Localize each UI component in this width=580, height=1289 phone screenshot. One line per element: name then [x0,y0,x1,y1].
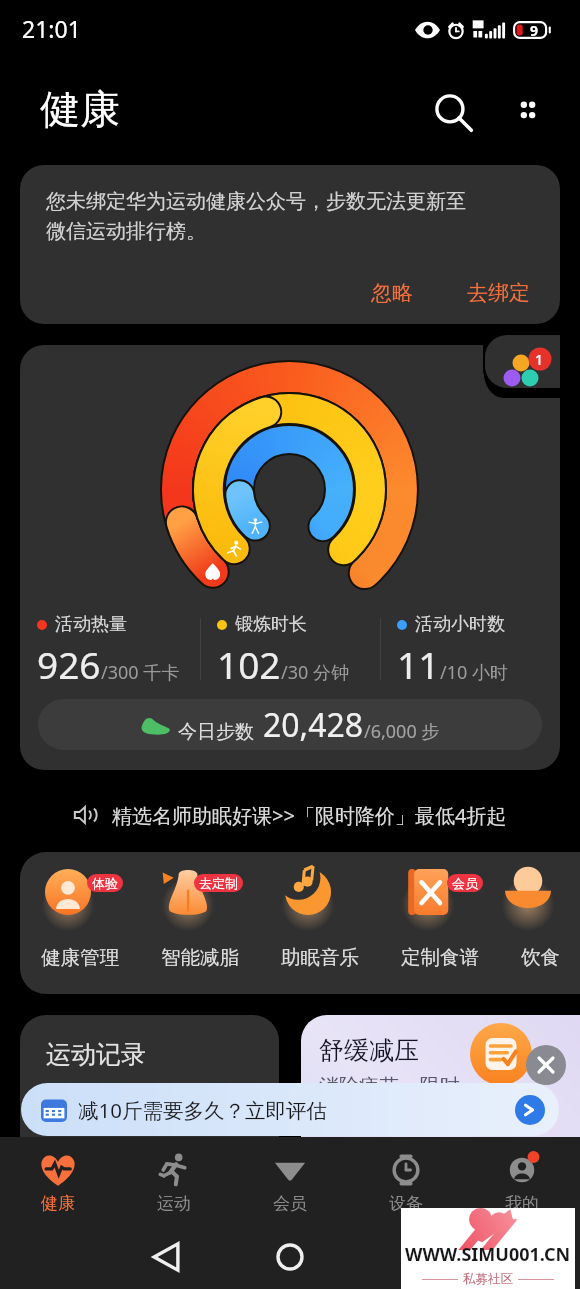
button[interactable]: 会员 [232,1137,348,1217]
staticText: 8.42 [46,1077,118,1126]
button[interactable]: Close [526,1045,566,1085]
button[interactable]: 您未绑定华为运动健康公众号，步数无法更新至 微信运动排行榜。 [20,165,560,324]
staticText: 11 [397,639,440,688]
staticText: 消除疲劳 限时… [319,1072,476,1099]
button[interactable]: Back [144,1235,188,1279]
staticText: 设备 [389,1193,423,1214]
button[interactable]: 运动记录 [20,1015,279,1165]
staticText: 我的 [505,1193,539,1214]
staticText: 1 [535,350,544,369]
staticText: 102 [217,639,281,688]
staticText: 忽略 [371,280,413,306]
staticText: 健康 [41,1193,75,1214]
staticText: 您未绑定华为运动健康公众号，步数无法更新至 微信运动排行榜。 [46,189,466,244]
staticText: WWW.SIMU001.CN [405,1242,571,1267]
button[interactable]: 运动 [116,1137,232,1217]
staticText: 私募社区 [463,1271,513,1287]
staticText: 智能减脂 [161,945,239,970]
staticText: 饮食 [521,945,560,970]
button[interactable]: Home [268,1235,312,1279]
button[interactable]: 减10斤需要多久？立即评估 [21,1083,559,1136]
staticText: 体验 [92,875,118,891]
staticText: 今日步数 [178,720,254,744]
staticText: /6,000 步 [364,719,440,744]
button[interactable]: 设备 [348,1137,464,1217]
button[interactable]: 会员 [380,852,500,994]
button[interactable]: 去绑定 [457,274,540,312]
staticText: 舒缓减压 [319,1035,419,1066]
staticText: 9 [530,21,539,39]
staticText: 会员 [273,1193,307,1214]
staticText: 去绑定 [467,280,530,306]
button[interactable]: 我的 [464,1137,580,1217]
button[interactable]: 舒缓减压 [301,1015,580,1165]
staticText: 20,428 [263,703,364,747]
staticText: 锻炼时长 [235,613,307,636]
staticText: 活动小时数 [415,613,505,636]
button[interactable]: 去定制 [140,852,260,994]
staticText: 去定制 [199,875,238,891]
staticText: 减10斤需要多久？立即评估 [78,1096,327,1124]
staticText: 助眠音乐 [281,945,359,970]
staticText: /30 分钟 [281,660,349,685]
button[interactable]: 忽略 [361,274,423,312]
staticText: /10 小时 [440,660,508,685]
staticText: 精选名师助眠好课>>「限时降价」最低4折起 [112,802,507,829]
button[interactable]: 饮食 [500,852,580,994]
button[interactable]: 体验 [20,852,140,994]
staticText: 21:01 [22,13,81,44]
button[interactable]: 今日步数 [38,699,542,750]
staticText: 定制食谱 [401,945,479,970]
staticText: 运动 [157,1193,191,1214]
button[interactable]: 健康 [0,1137,116,1217]
staticText: /300 千卡 [101,660,180,685]
button[interactable]: 精选名师助眠好课>>「限时降价」最低4折起 [0,778,580,852]
staticText: 健康 [40,84,120,134]
staticText: 926 [37,639,101,688]
staticText: 运动记录 [46,1039,146,1070]
button[interactable]: More options [502,86,554,138]
button[interactable]: Search [426,86,478,138]
staticText: 活动热量 [55,613,127,636]
staticText: 健康管理 [41,945,119,970]
button[interactable]: 活动热量 [20,345,560,770]
button[interactable]: 助眠音乐 [260,852,380,994]
staticText: 会员 [452,875,478,891]
